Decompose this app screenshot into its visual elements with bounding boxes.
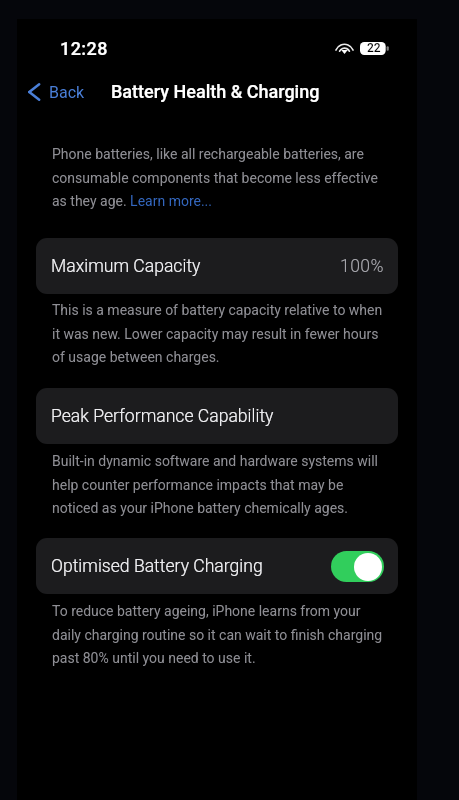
staticText: Back: [49, 83, 85, 102]
staticText: Phone batteries, like all rechargeable b…: [52, 146, 388, 209]
button[interactable]: Maximum Capacity: [36, 238, 398, 294]
staticText: Maximum Capacity: [51, 256, 201, 277]
staticText: Battery Health & Charging: [111, 81, 320, 102]
button[interactable]: Optimised Battery Charging toggle: [331, 551, 384, 582]
staticText: This is a measure of battery capacity re…: [52, 302, 388, 365]
button[interactable]: Peak Performance Capability: [36, 388, 398, 444]
staticText: Optimised Battery Charging: [51, 556, 263, 577]
button[interactable]: Back: [24, 80, 85, 104]
staticText: Peak Performance Capability: [51, 406, 274, 427]
staticText: Built-in dynamic software and hardware s…: [52, 453, 388, 516]
staticText: 12:28: [60, 38, 108, 59]
staticText: 22: [367, 41, 381, 54]
staticText: To reduce battery ageing, iPhone learns …: [52, 603, 388, 666]
button[interactable]: Optimised Battery Charging: [36, 538, 398, 594]
staticText: 100%: [340, 256, 384, 277]
